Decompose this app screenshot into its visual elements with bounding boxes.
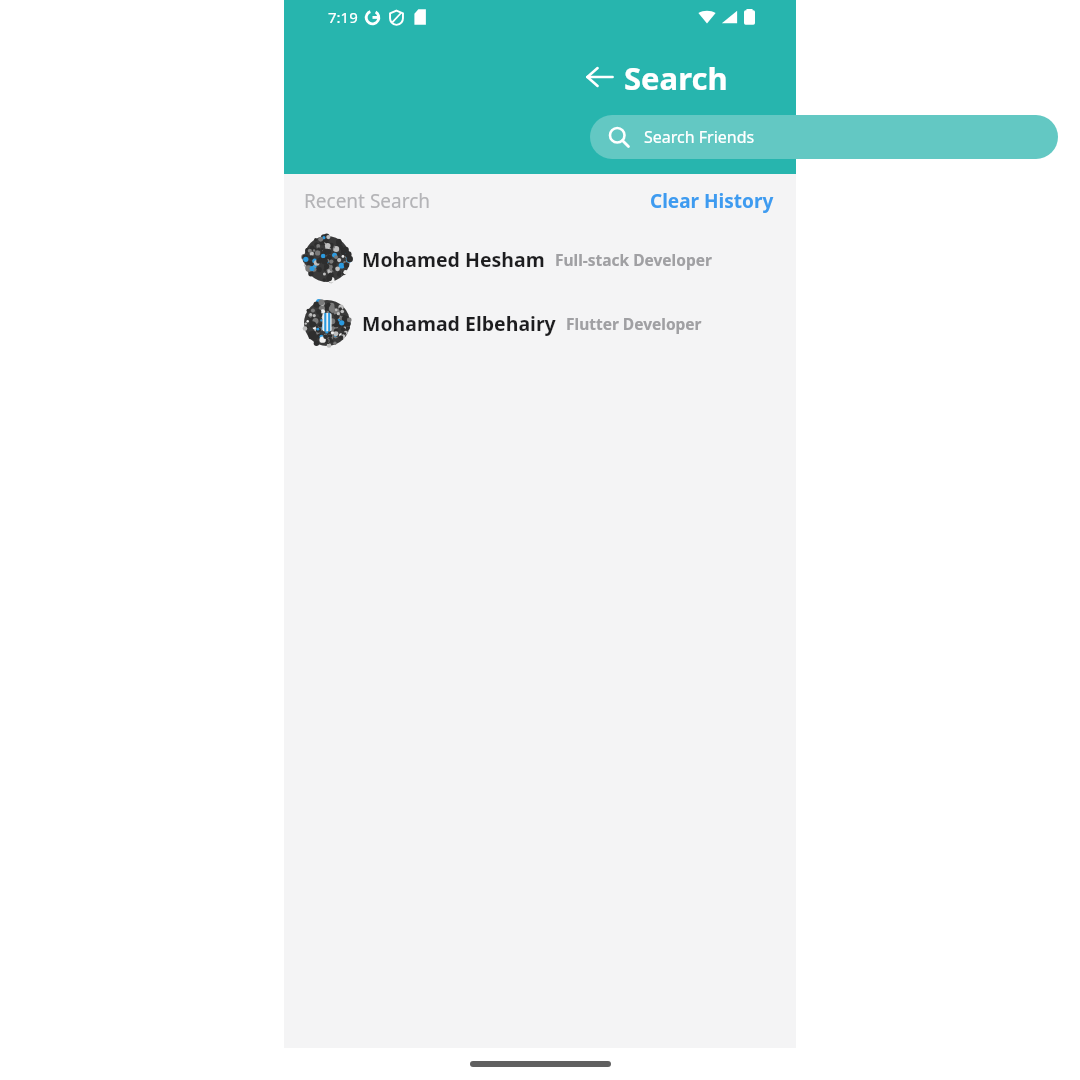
staticText: Mohamed Hesham: [362, 246, 545, 273]
staticText: 7:19: [328, 7, 358, 27]
button[interactable]: Clear History: [650, 188, 774, 214]
staticText: Clear History: [650, 188, 774, 214]
staticText: Full-stack Developer: [555, 249, 712, 270]
staticText: Recent Search: [304, 188, 431, 214]
button[interactable]: Search Friends: [590, 115, 1058, 159]
staticText: Flutter Developer: [566, 313, 702, 334]
button[interactable]: Mohamed Hesham: [304, 232, 776, 286]
staticText: Search Friends: [644, 126, 755, 148]
staticText: Search: [624, 57, 728, 99]
button[interactable]: Mohamad Elbehairy: [304, 296, 776, 350]
staticText: Mohamad Elbehairy: [362, 310, 556, 337]
button[interactable]: Back: [578, 55, 622, 99]
